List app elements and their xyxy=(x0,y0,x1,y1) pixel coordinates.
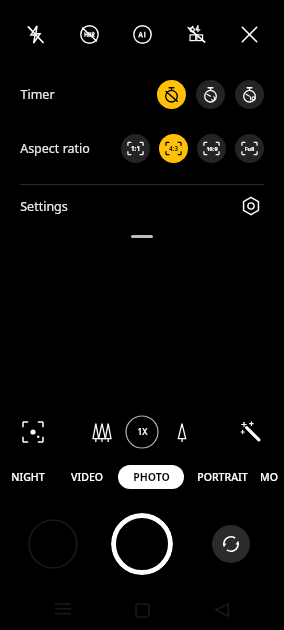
button[interactable]: Recents xyxy=(46,593,80,627)
button[interactable]: Shutter xyxy=(111,513,173,575)
button[interactable]: 16:9 xyxy=(197,134,226,163)
button[interactable]: Close xyxy=(232,17,266,51)
staticText: Settings xyxy=(20,198,68,215)
staticText: PHOTO xyxy=(133,470,170,484)
button[interactable]: VIDEO xyxy=(56,462,118,492)
staticText: MO xyxy=(260,470,278,484)
staticText: VIDEO xyxy=(71,470,103,484)
button[interactable]: Back xyxy=(205,593,239,627)
staticText: Aspect ratio xyxy=(20,140,90,157)
button[interactable]: Timer 10 seconds xyxy=(235,80,264,109)
button[interactable]: Home xyxy=(125,593,159,627)
button[interactable]: 1:1 xyxy=(121,134,150,163)
staticText: Timer xyxy=(20,86,55,103)
button[interactable]: Gallery xyxy=(28,519,78,569)
button[interactable]: Full xyxy=(235,134,264,163)
button[interactable]: Ultra wide xyxy=(87,417,117,447)
staticText: 16:9 xyxy=(206,145,218,153)
staticText: NIGHT xyxy=(11,470,45,484)
button[interactable]: HDR off xyxy=(72,17,106,51)
button[interactable]: AI scene detection xyxy=(125,17,159,51)
button[interactable]: Timer 3 seconds xyxy=(196,80,225,109)
staticText: Full xyxy=(244,145,255,153)
button[interactable]: Timer off xyxy=(157,80,186,109)
button[interactable]: Settings xyxy=(0,185,284,227)
button[interactable]: PHOTO xyxy=(118,465,184,489)
staticText: 1X xyxy=(137,426,148,438)
button[interactable]: NIGHT xyxy=(0,462,56,492)
staticText: 4:3 xyxy=(169,144,178,153)
button[interactable]: Switch camera xyxy=(212,525,250,563)
button[interactable]: 64 MP off xyxy=(179,17,213,51)
button[interactable]: PORTRAIT xyxy=(184,462,260,492)
staticText: 1:1 xyxy=(131,144,140,153)
button[interactable]: 4:3 xyxy=(159,134,188,163)
other: Settings xyxy=(238,193,264,219)
button[interactable]: Macro focus xyxy=(18,417,48,447)
button[interactable]: Filters xyxy=(236,417,266,447)
button[interactable]: 1X xyxy=(125,415,159,449)
button[interactable]: Telephoto xyxy=(167,417,197,447)
button[interactable]: Flash off xyxy=(18,17,52,51)
button[interactable]: MO xyxy=(260,462,284,492)
staticText: PORTRAIT xyxy=(197,470,248,484)
